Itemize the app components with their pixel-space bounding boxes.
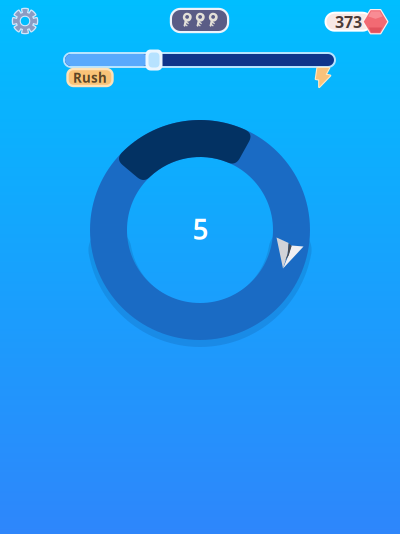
button[interactable]: Settings — [5, 1, 45, 41]
button[interactable]: Gems: 373 — [325, 9, 387, 35]
staticText: Rush — [73, 69, 107, 86]
button[interactable]: Rush — [67, 69, 112, 86]
staticText: 5 — [192, 210, 208, 248]
button[interactable]: Keys — [170, 8, 229, 33]
staticText: 373 — [335, 11, 362, 32]
